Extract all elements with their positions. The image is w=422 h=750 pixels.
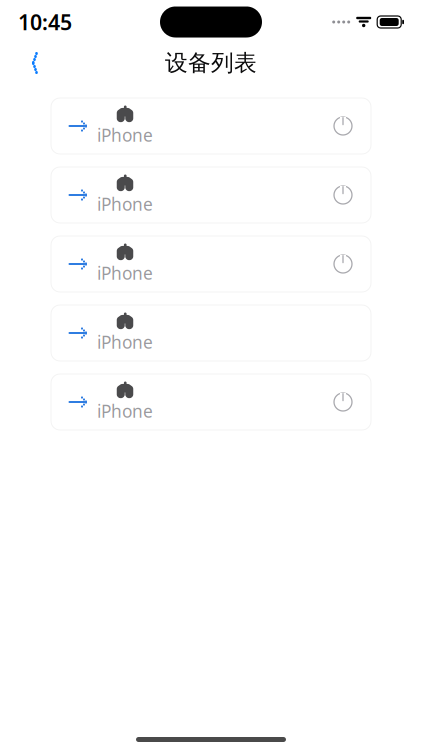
button[interactable]: Back [17,45,57,81]
button[interactable]: iPhone [51,167,371,223]
staticText: 设备列表 [165,49,257,77]
staticText: iPhone [97,123,153,146]
staticText: 10:45 [18,8,72,36]
staticText: iPhone [97,261,153,284]
button[interactable]: iPhone [51,305,371,361]
button[interactable]: iPhone [51,98,371,154]
staticText: iPhone [97,330,153,353]
staticText: iPhone [97,399,153,422]
button[interactable]: iPhone [51,374,371,430]
staticText: iPhone [97,192,153,215]
button[interactable]: iPhone [51,236,371,292]
